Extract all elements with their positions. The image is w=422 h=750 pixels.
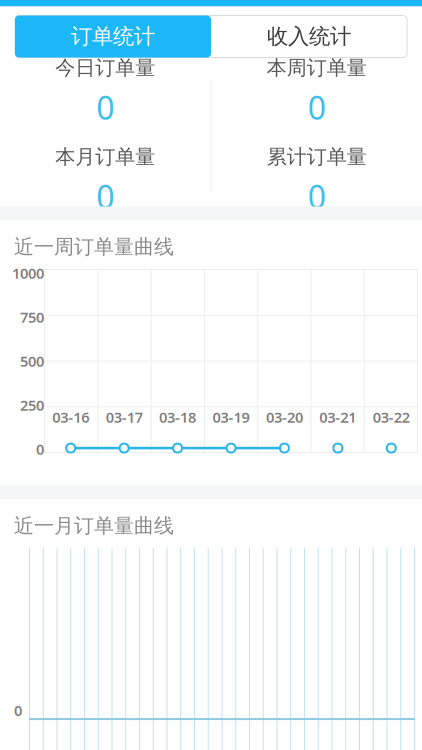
staticText: 03-20 [266,407,303,427]
staticText: 收入统计 [267,23,351,50]
button[interactable]: 订单统计 [15,15,211,57]
staticText: 500 [20,351,44,371]
staticText: 1000 [12,263,44,283]
staticText: 03-17 [106,407,143,427]
staticText: 0 [36,439,44,459]
staticText: 03-16 [52,407,89,427]
staticText: 0 [96,86,114,128]
staticText: 750 [20,307,44,327]
staticText: 本周订单量 [267,55,367,80]
staticText: 近一月订单量曲线 [14,513,174,538]
staticText: 03-22 [373,407,410,427]
staticText: 0 [308,175,326,218]
staticText: 250 [20,395,44,415]
staticText: 累计订单量 [267,144,367,169]
staticText: 近一周订单量曲线 [14,234,174,259]
staticText: 订单统计 [71,23,155,50]
staticText: 03-21 [319,407,356,427]
staticText: 0 [96,175,114,218]
staticText: 03-18 [159,407,196,427]
staticText: 本月订单量 [55,144,155,169]
staticText: 03-19 [212,407,249,427]
staticText: 今日订单量 [55,55,155,80]
button[interactable]: 收入统计 [211,15,407,57]
staticText: 0 [14,701,22,720]
staticText: 0 [308,86,326,128]
